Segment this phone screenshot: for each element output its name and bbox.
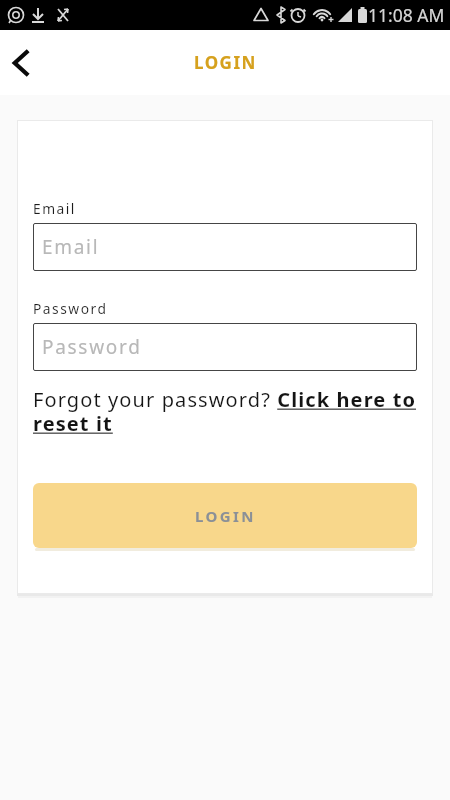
staticText: reset it <box>33 410 113 437</box>
staticText: 11:08 AM <box>368 3 445 27</box>
button[interactable]: LOGIN <box>33 483 417 548</box>
staticText: LOGIN <box>195 506 256 526</box>
staticText: Email <box>42 234 100 260</box>
button[interactable] <box>8 49 36 77</box>
staticText: LOGIN <box>194 51 257 74</box>
button[interactable]: Forgot your password? Click here to <box>33 386 417 440</box>
staticText: Email <box>33 199 76 218</box>
staticText: Password <box>42 334 142 360</box>
button[interactable]: Password <box>33 323 417 371</box>
staticText: Password <box>33 299 108 318</box>
staticText: Forgot your password? Click here to <box>33 386 417 413</box>
button[interactable]: Email <box>33 223 417 271</box>
